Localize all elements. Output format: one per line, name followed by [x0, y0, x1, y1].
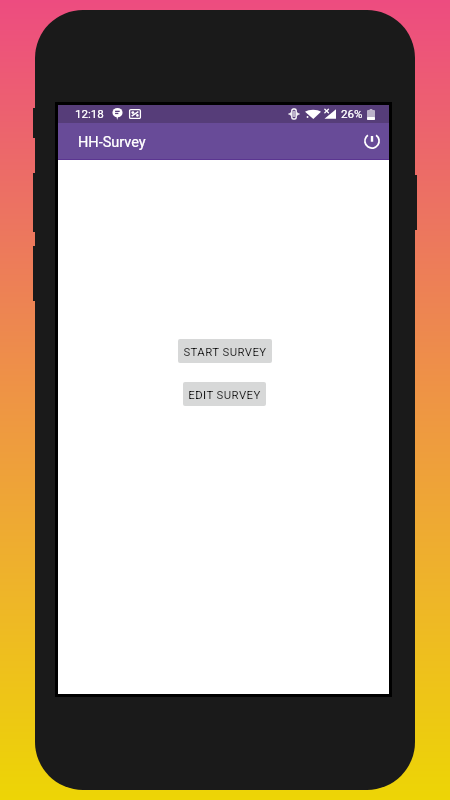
staticText: 12:18	[75, 107, 104, 121]
staticText: 26%	[341, 107, 363, 121]
button[interactable]: Power	[358, 128, 386, 156]
staticText: START SURVEY	[183, 345, 267, 358]
button[interactable]: START SURVEY	[178, 339, 272, 363]
staticText: HH-Survey	[78, 134, 146, 151]
button[interactable]: EDIT SURVEY	[183, 382, 266, 406]
staticText: EDIT SURVEY	[188, 388, 261, 401]
